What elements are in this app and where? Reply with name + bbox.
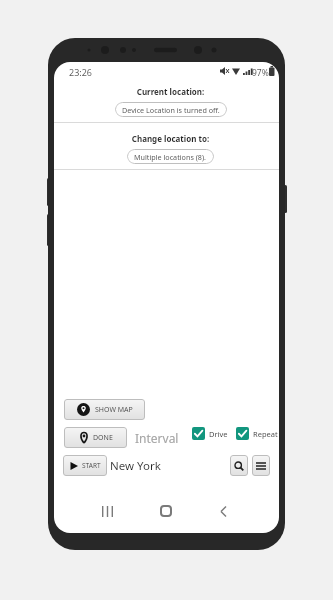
button[interactable] (230, 455, 248, 476)
button[interactable] (160, 505, 172, 517)
button[interactable]: Repeat (236, 427, 278, 440)
button[interactable] (252, 455, 270, 476)
staticText: 97% (252, 67, 269, 79)
staticText: Drive (209, 429, 228, 439)
staticText: 23:26 (69, 66, 93, 78)
button[interactable]: Device Location is turned off. (122, 102, 220, 117)
staticText: Change location to: (58, 133, 279, 144)
staticText: START (82, 461, 101, 470)
button[interactable]: START (63, 455, 107, 476)
button[interactable]: Drive (192, 427, 228, 440)
button[interactable]: Multiple locations (8). (134, 149, 207, 164)
staticText: Repeat (253, 429, 278, 439)
staticText: DONE (93, 433, 113, 443)
staticText: Multiple locations (8). (134, 152, 207, 162)
staticText: Interval (135, 430, 179, 446)
staticText: New York (110, 458, 161, 474)
button[interactable] (102, 506, 113, 517)
button[interactable]: DONE (64, 427, 127, 448)
button[interactable]: SHOW MAP (64, 399, 145, 420)
staticText: SHOW MAP (95, 405, 133, 415)
button[interactable] (220, 506, 227, 517)
staticText: Device Location is turned off. (122, 105, 220, 115)
staticText: Current location: (58, 86, 279, 97)
